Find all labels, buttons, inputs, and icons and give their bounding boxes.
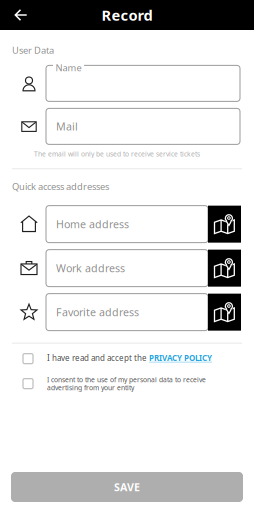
staticText: Favorite address (56, 305, 139, 319)
button[interactable]: I consent to the use of my personal data… (0, 376, 254, 392)
staticText: The email will only be used to receive s… (34, 149, 200, 158)
staticText: Name (55, 61, 81, 74)
button[interactable]: Pick Home address on map (208, 206, 241, 243)
staticText: advertising from your entity (47, 383, 134, 392)
staticText: Work address (56, 261, 125, 275)
button[interactable]: SAVE (11, 472, 243, 502)
staticText: Record (101, 5, 152, 25)
staticText: Mail (56, 119, 78, 133)
staticText: PRIVACY POLICY (149, 353, 212, 363)
staticText: Quick access addresses (12, 180, 109, 193)
staticText: I consent to the use of my personal data… (47, 375, 206, 384)
button[interactable]: I have read and accept the (0, 353, 254, 364)
button[interactable]: Pick Favorite address on map (208, 294, 241, 331)
staticText: I have read and accept the (47, 353, 147, 363)
staticText: Home address (56, 217, 129, 231)
staticText: SAVE (114, 480, 140, 494)
staticText: User Data (12, 44, 54, 56)
button[interactable]: Pick Work address on map (208, 250, 241, 287)
button[interactable]: Back (7, 1, 35, 29)
